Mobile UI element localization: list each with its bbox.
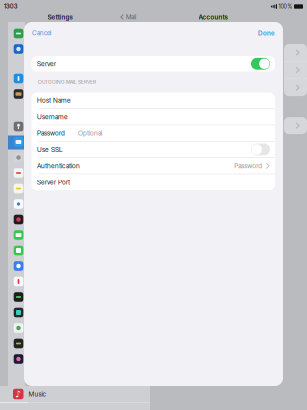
staticText: Optional	[78, 129, 102, 137]
staticText: Username	[37, 113, 68, 121]
staticText: Accounts	[198, 13, 227, 21]
button[interactable]: Server Port	[31, 174, 275, 190]
button[interactable]: Cancel	[24, 23, 55, 43]
staticText: 13:03	[4, 3, 17, 10]
staticText: ♪	[15, 389, 21, 399]
staticText: Authentication	[37, 162, 80, 170]
staticText: Server Port	[37, 178, 70, 186]
staticText: Server	[37, 60, 56, 68]
button[interactable]: Use SSL	[31, 142, 275, 157]
button[interactable]: Server	[31, 56, 275, 71]
staticText: Mail	[126, 13, 136, 21]
staticText: Done	[258, 29, 275, 37]
staticText: Settings	[47, 13, 72, 21]
staticText: 100 %	[278, 3, 292, 10]
button[interactable]: Host Name	[31, 92, 275, 108]
staticText: Music	[28, 390, 45, 398]
button[interactable]: Authentication	[31, 158, 275, 174]
staticText: Password	[234, 162, 262, 170]
button[interactable]: Done	[254, 23, 283, 43]
staticText: Cancel	[32, 29, 51, 37]
staticText: Use SSL	[37, 145, 63, 153]
button[interactable]: Username	[31, 109, 275, 125]
button[interactable]: ♪	[0, 386, 150, 402]
button[interactable]: Password	[31, 125, 275, 141]
staticText: Host Name	[37, 96, 71, 104]
staticText: Password	[37, 129, 65, 137]
staticText: OUTGOING MAIL SERVER	[38, 79, 96, 85]
button[interactable]: Mail	[120, 13, 150, 21]
